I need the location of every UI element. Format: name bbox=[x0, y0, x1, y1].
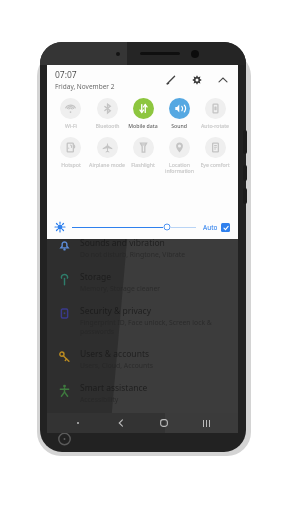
button[interactable]: Auto-rotate bbox=[197, 97, 233, 130]
staticText: Auto-rotate bbox=[201, 122, 229, 129]
button[interactable]: Wi-Fi bbox=[52, 97, 89, 130]
staticText: Hotspot bbox=[61, 161, 81, 168]
button[interactable]: Security & privacy bbox=[47, 299, 238, 342]
staticText: Location information bbox=[165, 161, 194, 175]
button[interactable]: Bluetooth bbox=[89, 97, 125, 130]
staticText: Mobile data bbox=[128, 122, 158, 129]
button[interactable]: Location information bbox=[161, 136, 197, 176]
staticText: Security & privacy bbox=[80, 305, 151, 317]
staticText: Sounds and vibration bbox=[80, 237, 165, 249]
button[interactable]: Eye comfort bbox=[197, 136, 233, 169]
button[interactable]: Auto brightness bbox=[221, 223, 230, 232]
button[interactable]: Collapse bbox=[216, 73, 230, 87]
button[interactable]: Flashlight bbox=[125, 136, 161, 169]
button[interactable]: Settings bbox=[190, 73, 204, 87]
staticText: Flashlight bbox=[131, 161, 155, 168]
staticText: Bluetooth bbox=[95, 122, 120, 129]
button[interactable]: Users & accounts bbox=[47, 342, 238, 376]
staticText: Wi-Fi bbox=[65, 122, 77, 129]
button[interactable]: Sound bbox=[161, 97, 197, 130]
button[interactable]: Home bbox=[142, 413, 185, 433]
staticText: Do not disturb, Ringtone, Vibrate bbox=[80, 250, 186, 259]
button[interactable]: Smart assistance bbox=[47, 376, 238, 410]
staticText: Fingerprint ID, Face unlock, Screen lock… bbox=[80, 318, 212, 336]
staticText: Airplane mode bbox=[89, 161, 125, 168]
staticText: Smart assistance bbox=[80, 382, 148, 394]
staticText: Accessibility bbox=[80, 395, 119, 404]
button[interactable]: Storage bbox=[47, 265, 238, 299]
button[interactable]: Edit bbox=[164, 73, 178, 87]
staticText: Storage bbox=[80, 271, 112, 283]
staticText: 07:07 bbox=[55, 69, 77, 81]
staticText: Sound bbox=[171, 122, 187, 129]
button[interactable]: Back bbox=[99, 413, 142, 433]
button[interactable]: Recents bbox=[185, 413, 228, 433]
staticText: Users & accounts bbox=[80, 348, 150, 360]
staticText: Memory, Storage cleaner bbox=[80, 284, 161, 293]
staticText: Friday, November 2 bbox=[55, 82, 115, 91]
button[interactable]: Notifications bbox=[57, 413, 99, 433]
button[interactable]: Google bbox=[47, 410, 238, 433]
button[interactable]: Airplane mode bbox=[89, 136, 125, 169]
button[interactable]: Mobile data bbox=[125, 97, 161, 130]
staticText: Auto bbox=[203, 223, 218, 232]
staticText: Users, Cloud, Accounts bbox=[80, 361, 153, 370]
staticText: Eye comfort bbox=[200, 161, 230, 168]
button[interactable]: Sounds and vibration bbox=[47, 231, 238, 265]
button[interactable]: Hotspot bbox=[52, 136, 89, 169]
